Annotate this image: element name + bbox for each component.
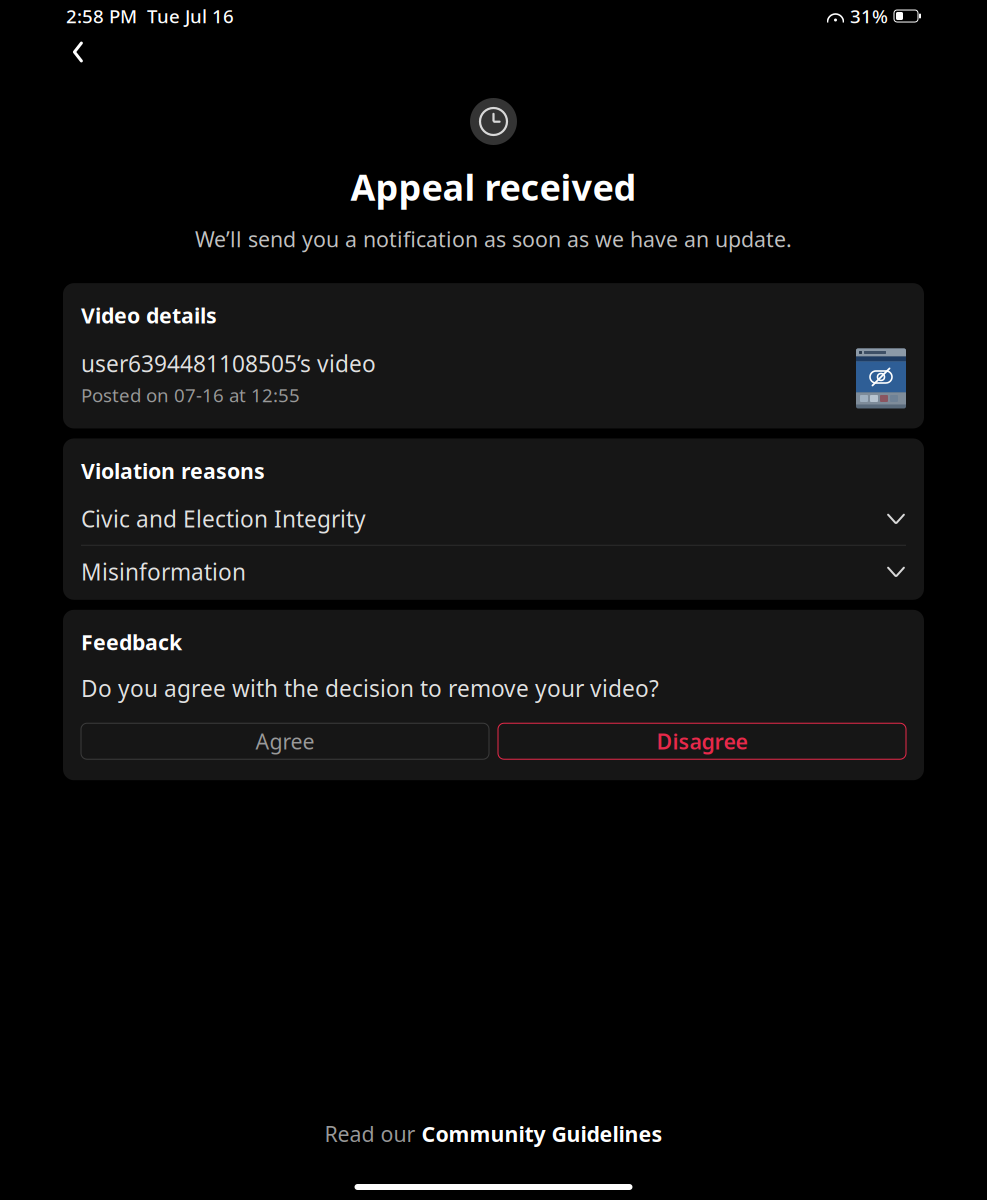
button[interactable]: Back: [56, 34, 100, 70]
button[interactable]: Read our: [314, 1114, 672, 1154]
staticText: Misinformation: [81, 557, 246, 587]
staticText: 31%: [850, 4, 888, 28]
staticText: Feedback: [81, 628, 182, 656]
staticText: Civic and Election Integrity: [81, 504, 366, 534]
staticText: We’ll send you a notification as soon as…: [195, 225, 792, 253]
button[interactable]: Disagree: [498, 723, 906, 759]
staticText: 2:58 PM: [66, 4, 137, 28]
staticText: Community Guidelines: [421, 1120, 662, 1148]
button[interactable]: Civic and Election Integrity: [63, 493, 924, 545]
staticText: Agree: [255, 727, 314, 755]
staticText: Video details: [81, 301, 217, 329]
button[interactable]: Misinformation: [63, 546, 924, 598]
staticText: Read our: [324, 1120, 421, 1148]
staticText: Posted on 07-16 at 12:55: [81, 383, 300, 407]
staticText: user6394481108505’s video: [81, 348, 376, 379]
staticText: Disagree: [656, 727, 747, 755]
staticText: Tue Jul 16: [147, 4, 234, 28]
button[interactable]: Agree: [81, 723, 489, 759]
staticText: Appeal received: [350, 163, 636, 211]
staticText: Violation reasons: [81, 456, 265, 485]
staticText: Do you agree with the decision to remove…: [81, 673, 659, 703]
